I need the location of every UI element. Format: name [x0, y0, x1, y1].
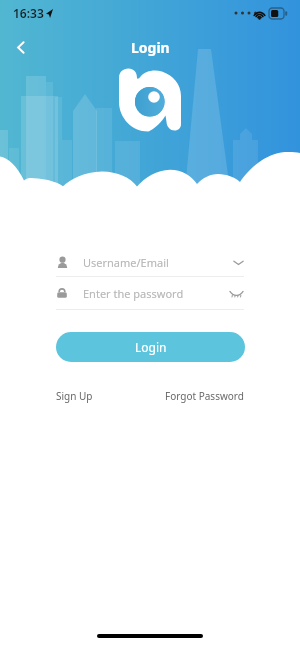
button[interactable]: Username/Email	[56, 249, 244, 276]
staticText: 16:33	[13, 5, 44, 21]
button[interactable]: Enter the password	[56, 277, 244, 309]
button[interactable]: Sign Up	[56, 389, 93, 403]
staticText: Forgot Password	[165, 389, 244, 403]
staticText: Sign Up	[56, 389, 93, 403]
staticText: Username/Email	[83, 255, 169, 270]
button[interactable]: Back	[5, 31, 37, 63]
staticText: Enter the password	[83, 286, 184, 301]
staticText: Login	[131, 38, 170, 57]
button[interactable]: Login	[56, 332, 245, 362]
staticText: Login	[135, 339, 167, 355]
button[interactable]: Forgot Password	[165, 389, 244, 403]
